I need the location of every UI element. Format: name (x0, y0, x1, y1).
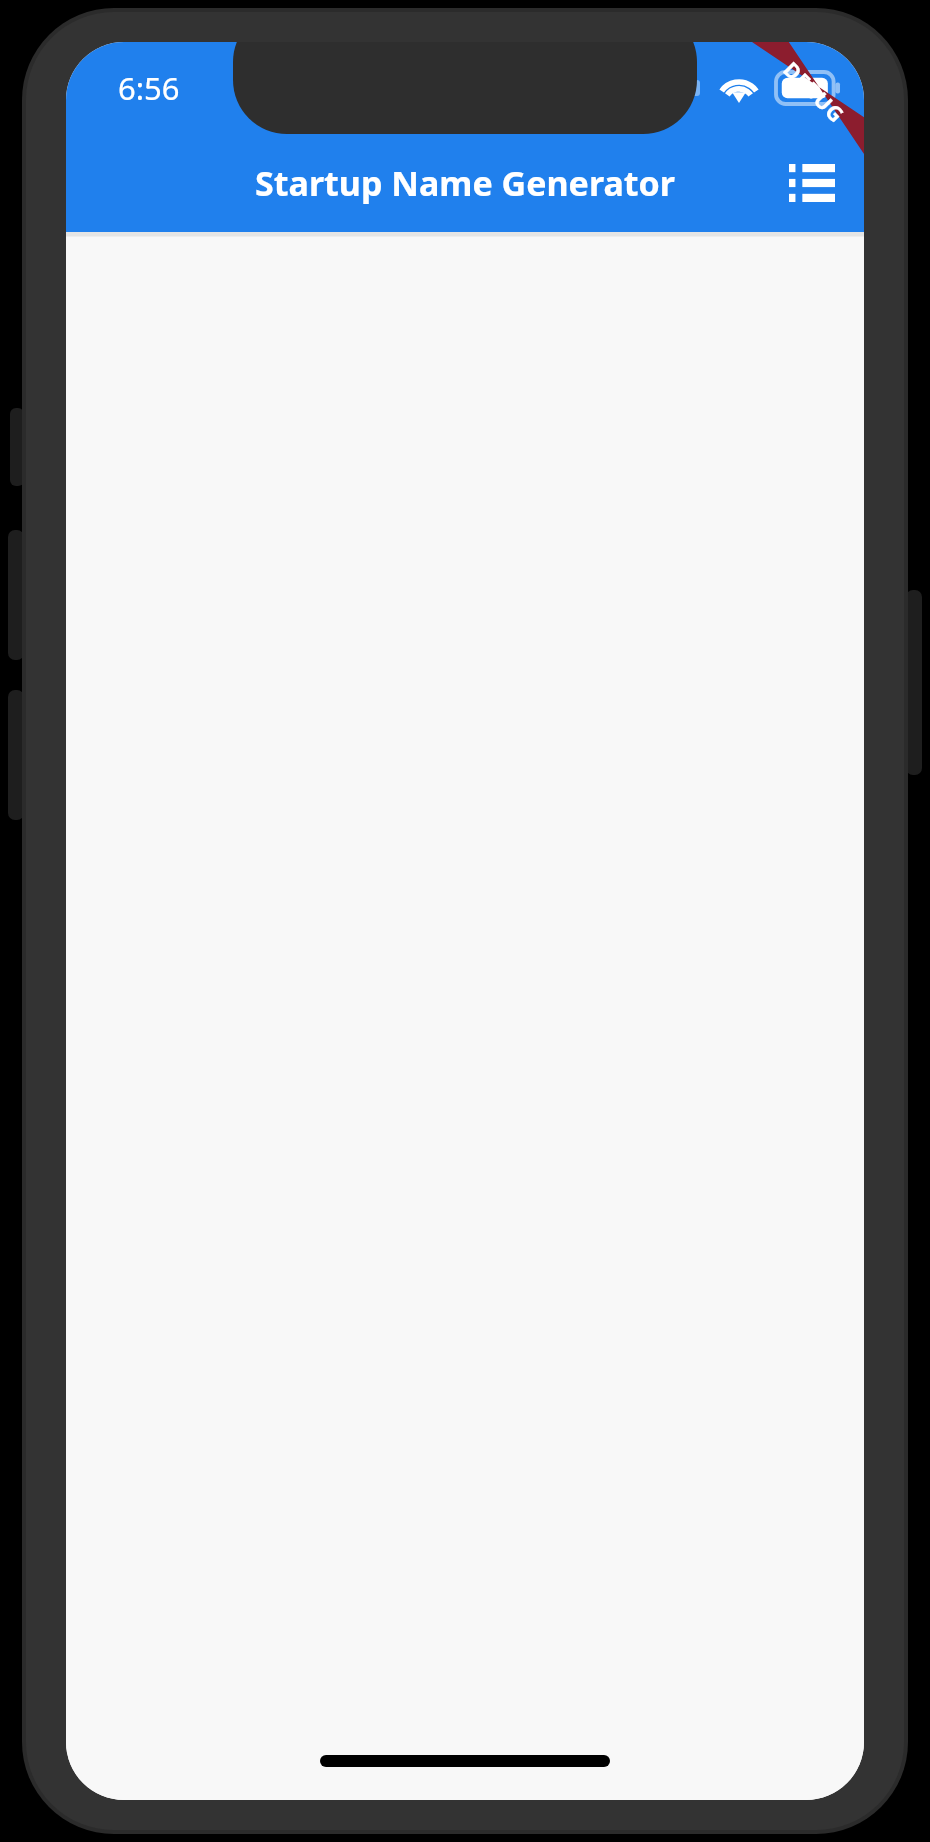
staticText: Startup Name Generator (255, 160, 675, 206)
button[interactable]: Saved suggestions (776, 147, 848, 219)
staticText: DEBUG (777, 55, 851, 130)
staticText: 6:56 (118, 67, 180, 109)
